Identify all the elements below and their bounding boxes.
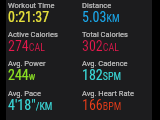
button[interactable]: Workout Time (8, 1, 78, 27)
button[interactable]: Distance (82, 1, 152, 27)
staticText: Avg. Heart Rate (82, 89, 134, 98)
staticText: Total Calories (82, 30, 128, 39)
staticText: 182SPM (82, 67, 122, 83)
button[interactable]: Avg. Heart Rate (82, 89, 152, 115)
staticText: 0:21:37 (8, 9, 50, 25)
staticText: 244w (8, 67, 36, 83)
button[interactable]: Total Calories (82, 30, 152, 56)
button[interactable]: Active Calories (8, 30, 78, 56)
staticText: Avg. Pace (8, 89, 42, 98)
button[interactable]: Avg. Pace (8, 89, 78, 115)
staticText: Workout Time (8, 1, 55, 10)
staticText: Avg. Cadence (82, 59, 128, 68)
staticText: 4'18"/KM (8, 97, 53, 113)
button[interactable]: Avg. Cadence (82, 59, 152, 85)
staticText: 302CAL (82, 38, 119, 54)
staticText: 166BPM (82, 97, 122, 113)
staticText: Active Calories (8, 30, 58, 39)
button[interactable]: Avg. Power (8, 59, 78, 85)
staticText: 5.03KM (82, 9, 120, 25)
staticText: Distance (82, 1, 112, 10)
staticText: Avg. Power (8, 59, 46, 68)
staticText: 274CAL (8, 38, 45, 54)
